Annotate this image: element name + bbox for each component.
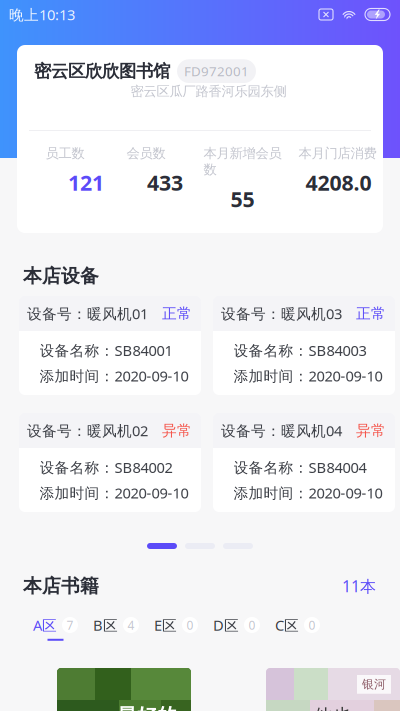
staticText: 55 (230, 185, 254, 213)
button[interactable]: 设备号：暖风机01 (19, 296, 201, 395)
staticText: 最好的 (117, 704, 177, 711)
staticText: 员工数 (45, 145, 84, 161)
staticText: 433 (147, 168, 183, 197)
staticText: 他也 (314, 704, 352, 711)
staticText: 4208.0 (305, 168, 371, 197)
staticText: A区 (33, 615, 57, 635)
button[interactable]: 设备号：暖风机03 (213, 296, 395, 395)
staticText: 密云区欣欣图书馆 (34, 60, 170, 82)
staticText: 添加时间：2020-09-10 (39, 366, 188, 385)
staticText: 添加时间：2020-09-10 (233, 483, 382, 502)
staticText: 设备名称：SB84003 (233, 340, 366, 360)
button[interactable]: E区 (154, 615, 198, 641)
staticText: 添加时间：2020-09-10 (233, 366, 382, 385)
staticText: 本月门店消费 (298, 145, 376, 161)
staticText: 异常 (356, 421, 386, 439)
staticText: 设备号：暖风机02 (27, 421, 148, 440)
button[interactable]: C区 (275, 615, 320, 641)
staticText: 11本 (342, 575, 376, 597)
staticText: B区 (93, 615, 118, 635)
staticText: 4 (127, 617, 134, 633)
staticText: 正常 (356, 304, 386, 322)
staticText: 设备号：暖风机04 (221, 421, 342, 440)
staticText: E区 (154, 615, 177, 635)
staticText: 0 (308, 617, 315, 633)
button[interactable]: 11本 (342, 575, 376, 597)
staticText: 本月新增会员数 (203, 145, 281, 178)
staticText: 密云区瓜厂路香河乐园东侧 (130, 83, 286, 99)
staticText: 正常 (162, 304, 192, 322)
staticText: 121 (68, 168, 104, 197)
button[interactable]: 书籍 最好的 (57, 668, 191, 711)
staticText: 异常 (162, 421, 192, 439)
staticText: 设备名称：SB84004 (233, 457, 366, 477)
staticText: 设备号：暖风机01 (27, 304, 148, 323)
staticText: 会员数 (126, 145, 165, 161)
staticText: 添加时间：2020-09-10 (39, 483, 188, 502)
staticText: 银河 (362, 677, 386, 692)
button[interactable]: 设备号：暖风机04 (213, 413, 395, 512)
staticText: 晚上10:13 (9, 5, 75, 24)
staticText: 设备号：暖风机03 (221, 304, 342, 323)
button[interactable]: B区 (93, 615, 139, 641)
staticText: C区 (275, 615, 299, 635)
staticText: 0 (248, 617, 255, 633)
staticText: D区 (213, 615, 239, 635)
staticText: 7 (66, 617, 73, 633)
staticText: 本店设备 (23, 264, 99, 287)
button[interactable]: 书籍 银河 (266, 668, 400, 711)
button[interactable]: 设备号：暖风机02 (19, 413, 201, 512)
staticText: 设备名称：SB84001 (39, 340, 172, 360)
staticText: FD972001 (184, 62, 249, 80)
staticText: 0 (186, 617, 193, 633)
staticText: 设备名称：SB84002 (39, 457, 172, 477)
button[interactable]: D区 (213, 615, 260, 641)
button[interactable]: A区 (33, 615, 78, 641)
staticText: 本店书籍 (23, 574, 99, 597)
